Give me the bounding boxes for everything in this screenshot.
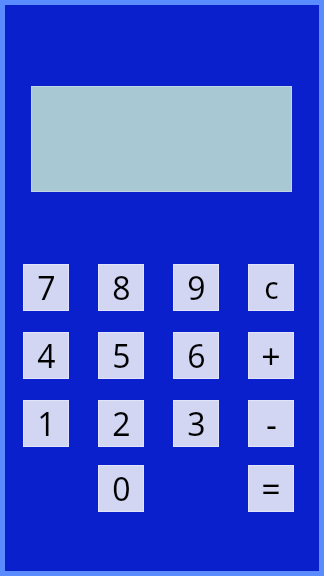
staticText: 7	[37, 266, 56, 310]
button[interactable]: 9	[173, 264, 219, 311]
staticText: 9	[187, 266, 206, 310]
staticText: =	[261, 466, 281, 512]
button[interactable]: 3	[173, 400, 219, 447]
button[interactable]: =	[248, 465, 294, 512]
button[interactable]: 8	[98, 264, 144, 311]
staticText: 8	[112, 266, 131, 310]
button[interactable]: 5	[98, 332, 144, 379]
button[interactable]: 1	[23, 400, 69, 447]
button[interactable]: 6	[173, 332, 219, 379]
button[interactable]: +	[248, 332, 294, 379]
staticText: +	[261, 333, 281, 379]
staticText: 6	[187, 334, 206, 378]
button[interactable]: c	[248, 264, 294, 311]
staticText: 0	[112, 467, 131, 511]
button[interactable]: -	[248, 400, 294, 447]
staticText: 4	[37, 334, 56, 378]
button[interactable]: 2	[98, 400, 144, 447]
staticText: 2	[112, 402, 131, 446]
staticText: 3	[187, 402, 206, 446]
staticText: c	[264, 267, 279, 308]
button[interactable]: 7	[23, 264, 69, 311]
button[interactable]: Display	[31, 86, 292, 192]
staticText: -	[266, 401, 277, 447]
button[interactable]: 4	[23, 332, 69, 379]
staticText: 1	[37, 402, 56, 446]
staticText: 5	[112, 334, 131, 378]
button[interactable]: 0	[98, 465, 144, 512]
